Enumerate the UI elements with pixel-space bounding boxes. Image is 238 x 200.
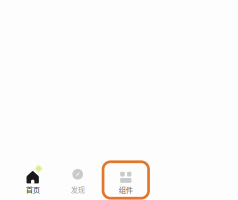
button[interactable]: 组件 <box>103 162 148 198</box>
staticText: 发现 <box>71 184 85 195</box>
button[interactable]: 首页 <box>10 156 56 200</box>
staticText: 组件 <box>119 184 133 195</box>
staticText: 首页 <box>26 184 40 195</box>
button[interactable]: 发现 <box>55 156 101 200</box>
